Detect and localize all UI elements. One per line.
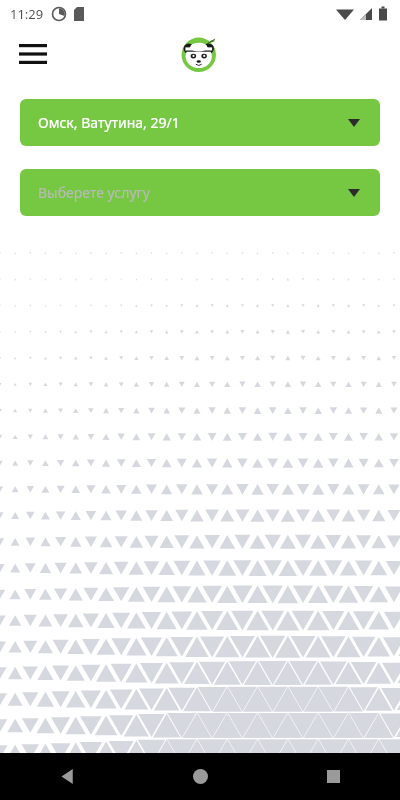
button[interactable]: Menu xyxy=(14,37,52,71)
staticText: 11:29 xyxy=(10,5,44,23)
button[interactable]: Recent apps xyxy=(267,753,400,800)
button[interactable]: Back xyxy=(0,753,134,800)
staticText: Выберете услугу xyxy=(38,183,150,202)
button[interactable]: Выберете услугу xyxy=(20,169,380,216)
button[interactable]: Home xyxy=(134,753,267,800)
button[interactable]: Logo xyxy=(178,32,222,76)
staticText: Омск, Ватутина, 29/1 xyxy=(38,113,180,132)
button[interactable]: Омск, Ватутина, 29/1 xyxy=(20,99,380,146)
